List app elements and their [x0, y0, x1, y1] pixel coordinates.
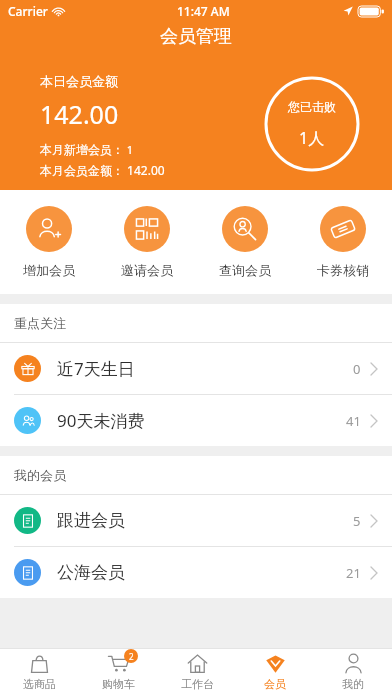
staticText: 重点关注: [14, 315, 66, 331]
staticText: 卡券核销: [317, 262, 369, 278]
staticText: 本月新增会员：: [40, 142, 124, 157]
staticText: 41: [346, 412, 361, 430]
staticText: 0: [353, 360, 361, 378]
button[interactable]: 2: [79, 648, 158, 696]
staticText: 1: [124, 142, 134, 157]
button[interactable]: 查询会员: [196, 190, 294, 294]
staticText: 邀请会员: [121, 262, 173, 278]
staticText: 我的: [342, 677, 364, 691]
staticText: 购物车: [102, 677, 135, 691]
button[interactable]: 选商品: [0, 648, 79, 696]
button[interactable]: 卡券核销: [294, 190, 392, 294]
button[interactable]: 近7天生日: [0, 343, 392, 395]
button[interactable]: 90天未消费: [0, 395, 392, 446]
staticText: 我的会员: [14, 467, 66, 483]
staticText: 近7天生日: [57, 357, 135, 380]
staticText: 11:47 AM: [177, 3, 230, 19]
staticText: 5: [353, 512, 361, 530]
staticText: 选商品: [23, 677, 56, 691]
button[interactable]: 增加会员: [0, 190, 98, 294]
staticText: 增加会员: [23, 262, 75, 278]
button[interactable]: 我的: [314, 648, 392, 696]
staticText: 142.00: [40, 97, 119, 131]
staticText: Carrier: [8, 3, 48, 19]
staticText: 90天未消费: [57, 409, 145, 432]
staticText: 会员管理: [160, 25, 232, 48]
button[interactable]: 公海会员: [0, 547, 392, 598]
button[interactable]: 跟进会员: [0, 495, 392, 547]
staticText: 2: [129, 651, 134, 662]
staticText: 公海会员: [57, 562, 125, 583]
staticText: 工作台: [181, 677, 214, 691]
staticText: 跟进会员: [57, 510, 125, 531]
staticText: 本日会员金额: [40, 73, 118, 89]
button[interactable]: 邀请会员: [98, 190, 196, 294]
staticText: 142.00: [124, 162, 165, 178]
staticText: 查询会员: [219, 262, 271, 278]
button[interactable]: 工作台: [158, 648, 236, 696]
staticText: 您已击败: [288, 99, 336, 114]
staticText: 会员: [264, 677, 286, 691]
staticText: 21: [346, 564, 361, 582]
staticText: 本月会员金额：: [40, 163, 124, 178]
staticText: 1人: [299, 127, 325, 149]
button[interactable]: 会员: [236, 648, 314, 696]
